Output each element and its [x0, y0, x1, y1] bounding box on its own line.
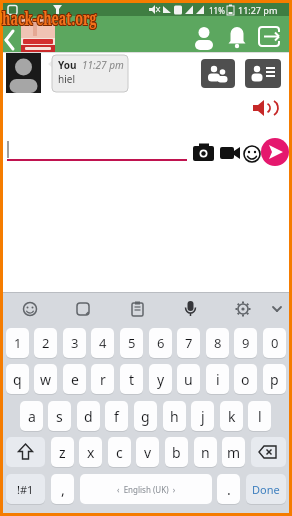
staticText: u: [184, 370, 193, 389]
button[interactable]: [201, 59, 235, 88]
staticText: 5: [128, 334, 136, 352]
staticText: ‹ English (UK) ›: [117, 484, 176, 495]
button[interactable]: [251, 437, 286, 467]
staticText: f: [114, 407, 119, 426]
button[interactable]: 2: [34, 328, 57, 358]
staticText: hack-cheat.org: [3, 5, 98, 30]
button[interactable]: e: [63, 364, 86, 394]
button[interactable]: [219, 143, 241, 163]
button[interactable]: p: [263, 364, 286, 394]
button[interactable]: ,: [51, 474, 74, 504]
button[interactable]: .: [217, 474, 240, 504]
staticText: 7: [185, 334, 193, 352]
staticText: p: [270, 370, 279, 389]
button[interactable]: k: [220, 401, 243, 431]
button[interactable]: !#1: [6, 474, 45, 504]
button[interactable]: f: [105, 401, 128, 431]
button[interactable]: h: [163, 401, 186, 431]
button[interactable]: ‹ English (UK) ›: [80, 474, 212, 504]
staticText: 11%: [209, 5, 225, 16]
button[interactable]: g: [134, 401, 157, 431]
staticText: 2: [42, 334, 50, 352]
button[interactable]: b: [165, 437, 188, 467]
button[interactable]: 0: [263, 328, 286, 358]
staticText: hack-cheat.org: [2, 6, 97, 31]
staticText: 0: [271, 334, 279, 352]
button[interactable]: y: [149, 364, 172, 394]
staticText: 1: [14, 334, 22, 352]
button[interactable]: v: [136, 437, 159, 467]
button[interactable]: i: [206, 364, 229, 394]
button[interactable]: 8: [206, 328, 229, 358]
button[interactable]: 9: [234, 328, 257, 358]
button[interactable]: s: [48, 401, 71, 431]
button[interactable]: [245, 59, 281, 88]
staticText: 11:27 pm: [238, 4, 278, 16]
staticText: 9: [242, 334, 250, 352]
button[interactable]: d: [77, 401, 100, 431]
staticText: 3: [71, 334, 79, 352]
staticText: v: [144, 443, 152, 462]
staticText: a: [28, 407, 36, 426]
button[interactable]: 6: [149, 328, 172, 358]
button[interactable]: x: [79, 437, 102, 467]
button[interactable]: [3, 27, 21, 53]
staticText: l: [258, 407, 262, 426]
button[interactable]: 1: [6, 328, 29, 358]
staticText: 8: [214, 334, 222, 352]
button[interactable]: [261, 138, 289, 166]
staticText: h: [170, 407, 179, 426]
button[interactable]: a: [20, 401, 43, 431]
button[interactable]: n: [194, 437, 217, 467]
button[interactable]: j: [191, 401, 214, 431]
staticText: You: [58, 58, 77, 72]
staticText: !#1: [17, 482, 34, 497]
button[interactable]: [191, 25, 217, 49]
staticText: 4: [99, 334, 107, 352]
button[interactable]: [252, 99, 276, 119]
button[interactable]: [21, 19, 55, 52]
staticText: n: [201, 443, 210, 462]
staticText: w: [40, 370, 52, 389]
button[interactable]: 4: [91, 328, 114, 358]
staticText: o: [241, 370, 250, 389]
button[interactable]: [48, 55, 128, 92]
button[interactable]: c: [108, 437, 131, 467]
staticText: z: [59, 443, 66, 462]
button[interactable]: Done: [246, 474, 286, 504]
button[interactable]: q: [6, 364, 29, 394]
button[interactable]: o: [234, 364, 257, 394]
button[interactable]: z: [51, 437, 74, 467]
button[interactable]: [242, 144, 262, 164]
staticText: y: [157, 370, 165, 389]
staticText: c: [116, 443, 123, 462]
button[interactable]: u: [177, 364, 200, 394]
button[interactable]: 7: [177, 328, 200, 358]
button[interactable]: w: [34, 364, 57, 394]
button[interactable]: [6, 437, 45, 467]
staticText: hack-cheat.org: [2, 7, 97, 32]
staticText: m: [227, 443, 241, 462]
staticText: j: [201, 407, 205, 426]
button[interactable]: r: [91, 364, 114, 394]
button[interactable]: [191, 141, 217, 165]
button[interactable]: t: [120, 364, 143, 394]
staticText: hack-cheat.org: [1, 5, 96, 30]
staticText: t: [129, 370, 135, 389]
staticText: x: [87, 443, 95, 462]
staticText: s: [56, 407, 63, 426]
button[interactable]: 5: [120, 328, 143, 358]
button[interactable]: [6, 53, 41, 93]
staticText: e: [71, 370, 79, 389]
staticText: hack-cheat.org: [1, 7, 96, 32]
button[interactable]: [224, 25, 250, 49]
button[interactable]: [255, 24, 285, 50]
button[interactable]: m: [222, 437, 245, 467]
staticText: hack-cheat.org: [1, 6, 96, 31]
button[interactable]: l: [248, 401, 271, 431]
button[interactable]: 3: [63, 328, 86, 358]
staticText: 6: [157, 334, 165, 352]
staticText: 11:27 pm: [82, 58, 124, 72]
staticText: k: [228, 407, 236, 426]
